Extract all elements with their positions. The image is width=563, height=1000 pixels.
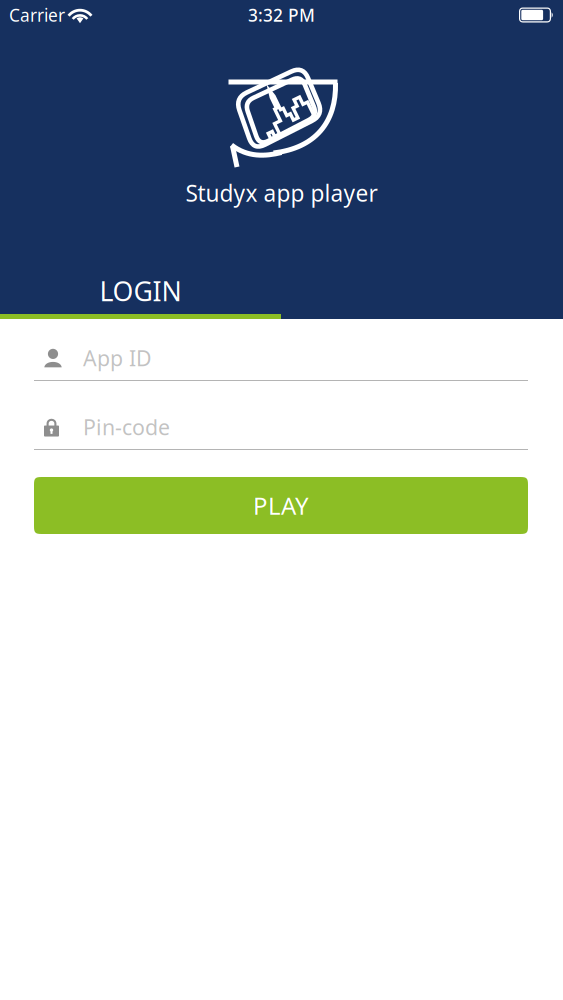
- button[interactable]: LOGIN: [0, 268, 281, 314]
- staticText: PLAY: [253, 490, 309, 521]
- staticText: LOGIN: [99, 273, 181, 309]
- staticText: Studyx app player: [185, 178, 377, 208]
- button[interactable]: App ID: [34, 336, 528, 381]
- button[interactable]: PLAY: [34, 477, 528, 534]
- staticText: Carrier: [9, 3, 65, 26]
- staticText: App ID: [83, 344, 152, 372]
- staticText: 3:32 PM: [248, 3, 315, 26]
- staticText: Pin-code: [83, 413, 170, 441]
- button[interactable]: Pin-code: [34, 405, 528, 450]
